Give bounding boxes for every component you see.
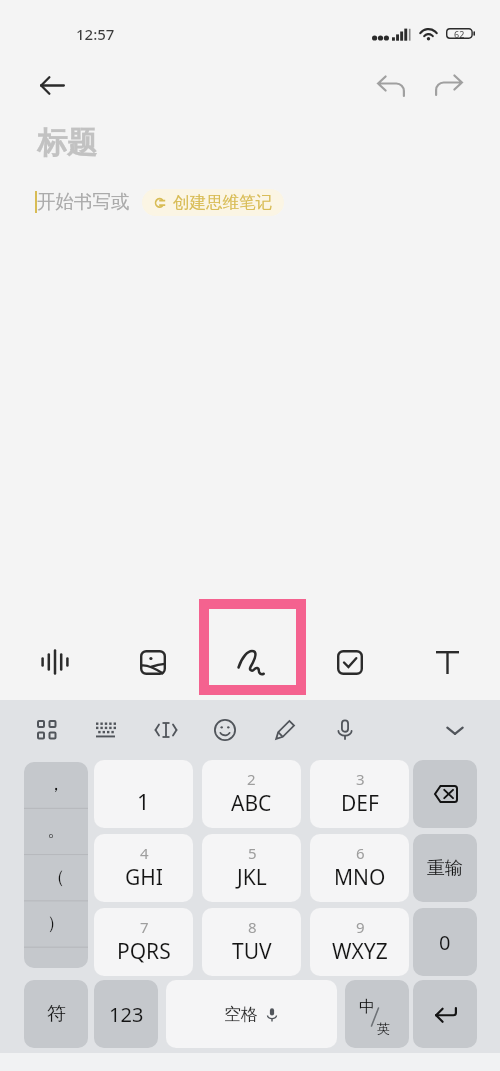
staticText: ABC [231, 789, 272, 818]
staticText: 62 [454, 28, 465, 39]
button[interactable]: 5 [202, 834, 301, 902]
button[interactable]: Back [28, 61, 76, 109]
staticText: TUV [232, 937, 272, 966]
button[interactable]: Hide keyboard [438, 713, 472, 747]
button[interactable] [24, 947, 88, 968]
button[interactable]: Keyboard layout [89, 713, 123, 747]
staticText: GHI [125, 863, 163, 892]
staticText: 0 [439, 929, 451, 956]
button[interactable]: 7 [94, 908, 193, 976]
staticText: 8 [248, 917, 257, 937]
button[interactable]: 9 [310, 908, 409, 976]
staticText: 2 [247, 769, 256, 789]
button[interactable]: Delete [413, 760, 477, 828]
staticText: 中 [359, 997, 375, 1017]
button[interactable]: 。 [24, 808, 88, 854]
button[interactable]: Voice input [328, 713, 362, 747]
staticText: WXYZ [332, 937, 388, 966]
button[interactable]: Handwriting [219, 630, 283, 694]
staticText: 123 [109, 1001, 144, 1028]
button[interactable]: Checklist [318, 630, 382, 694]
button[interactable]: （ [24, 855, 88, 901]
button[interactable]: 符 [24, 980, 88, 1048]
staticText: 1 [137, 786, 150, 816]
staticText: PQRS [117, 937, 171, 966]
staticText: （ [47, 866, 65, 889]
button[interactable]: 中 [345, 980, 409, 1048]
button[interactable]: Insert image [121, 630, 185, 694]
staticText: 9 [356, 917, 365, 937]
staticText: 空格 [224, 1004, 258, 1025]
button[interactable]: Toolbar [30, 713, 64, 747]
staticText: 5 [248, 843, 257, 863]
button[interactable]: 重输 [413, 834, 477, 902]
staticText: ， [47, 773, 65, 796]
button[interactable]: 123 [94, 980, 158, 1048]
staticText: JKL [237, 863, 267, 892]
button[interactable]: 4 [94, 834, 193, 902]
staticText: MNO [334, 863, 386, 892]
button[interactable]: Handwrite [268, 713, 302, 747]
button[interactable]: Redo [427, 63, 471, 107]
staticText: 英 [377, 1020, 390, 1036]
button[interactable]: Emoji [208, 713, 242, 747]
button[interactable]: Text style [415, 630, 479, 694]
button[interactable]: 3 [310, 760, 409, 828]
staticText: DEF [341, 789, 379, 818]
staticText: 3 [356, 769, 365, 789]
button[interactable]: 0 [413, 908, 477, 976]
staticText: 标题 [37, 124, 97, 162]
staticText: 创建思维笔记 [173, 192, 272, 213]
staticText: 4 [140, 843, 149, 863]
button[interactable]: 创建思维笔记 [142, 189, 284, 216]
button[interactable]: 2 [202, 760, 301, 828]
button[interactable]: 1 [94, 760, 193, 828]
staticText: 开始书写或 [37, 190, 130, 213]
staticText: 符 [47, 1002, 66, 1026]
button[interactable]: 8 [202, 908, 301, 976]
button[interactable]: 6 [310, 834, 409, 902]
button[interactable]: Enter [413, 980, 477, 1048]
staticText: 7 [140, 917, 149, 937]
button[interactable]: 空格 [166, 980, 337, 1048]
staticText: 重输 [427, 857, 463, 880]
button[interactable]: ， [24, 762, 88, 808]
button[interactable]: Undo [369, 64, 413, 108]
button[interactable]: Move cursor [149, 713, 183, 747]
staticText: ） [47, 912, 65, 935]
staticText: 6 [356, 843, 365, 863]
button[interactable]: ） [24, 901, 88, 947]
staticText: 12:57 [76, 24, 115, 44]
button[interactable]: Voice note [23, 630, 87, 694]
staticText: 。 [47, 819, 65, 842]
